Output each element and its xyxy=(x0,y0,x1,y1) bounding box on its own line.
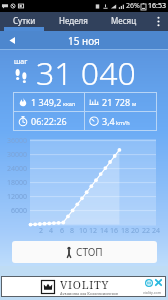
staticText: 24 xyxy=(151,226,161,236)
staticText: Аукционы для Коллекционеров xyxy=(60,291,118,295)
button[interactable]: 1 349,2 xyxy=(14,93,84,111)
staticText: 06:22:26 xyxy=(31,115,67,127)
staticText: 12000 xyxy=(7,192,28,202)
staticText: 14 xyxy=(99,226,109,236)
staticText: 30000 xyxy=(7,150,28,160)
staticText: 6000 xyxy=(11,206,28,216)
staticText: VIOLITY xyxy=(60,277,110,292)
button[interactable]: Неделя xyxy=(48,12,99,31)
button[interactable]: СТОП xyxy=(12,241,157,263)
staticText: 4 xyxy=(46,226,56,236)
button[interactable]: Previous day xyxy=(0,31,24,50)
staticText: 21 728 xyxy=(102,96,131,108)
staticText: violity.com xyxy=(143,290,161,295)
staticText: 18 xyxy=(120,226,130,236)
staticText: 20 xyxy=(130,226,140,236)
staticText: 1 349,2 xyxy=(31,96,62,108)
staticText: 18000 xyxy=(7,178,28,188)
button[interactable]: 06:22:26 xyxy=(14,112,84,130)
staticText: 22 xyxy=(141,226,151,236)
button[interactable]: More options xyxy=(149,12,168,31)
button[interactable]: Close ad xyxy=(154,278,163,287)
staticText: 10 xyxy=(78,226,88,236)
staticText: шаг xyxy=(14,57,28,67)
staticText: 12 xyxy=(88,226,98,236)
button[interactable]: 21 728 xyxy=(85,93,156,111)
staticText: 36000 xyxy=(7,136,28,146)
staticText: Месяц xyxy=(111,15,137,26)
staticText: 8 xyxy=(67,226,77,236)
button[interactable]: Месяц xyxy=(99,12,149,31)
button[interactable]: Ad info xyxy=(144,278,153,287)
staticText: 16:53 xyxy=(148,1,166,11)
button[interactable]: VIOLITY xyxy=(2,277,165,296)
staticText: 2 xyxy=(36,226,46,236)
button[interactable]: 3,4 xyxy=(85,112,156,130)
staticText: 6 xyxy=(57,226,67,236)
staticText: СТОП xyxy=(76,245,103,259)
staticText: 26% xyxy=(126,1,140,11)
staticText: 31 040 xyxy=(36,51,136,92)
staticText: km/h xyxy=(116,119,130,126)
staticText: 16 xyxy=(109,226,119,236)
staticText: 24000 xyxy=(7,164,28,174)
staticText: Сутки xyxy=(13,15,36,26)
staticText: Неделя xyxy=(59,15,88,26)
staticText: м xyxy=(132,100,137,107)
button[interactable]: Сутки xyxy=(0,12,48,31)
staticText: ккал xyxy=(63,100,76,107)
staticText: 15 ноя xyxy=(68,34,100,48)
staticText: 3,4 xyxy=(102,115,115,127)
